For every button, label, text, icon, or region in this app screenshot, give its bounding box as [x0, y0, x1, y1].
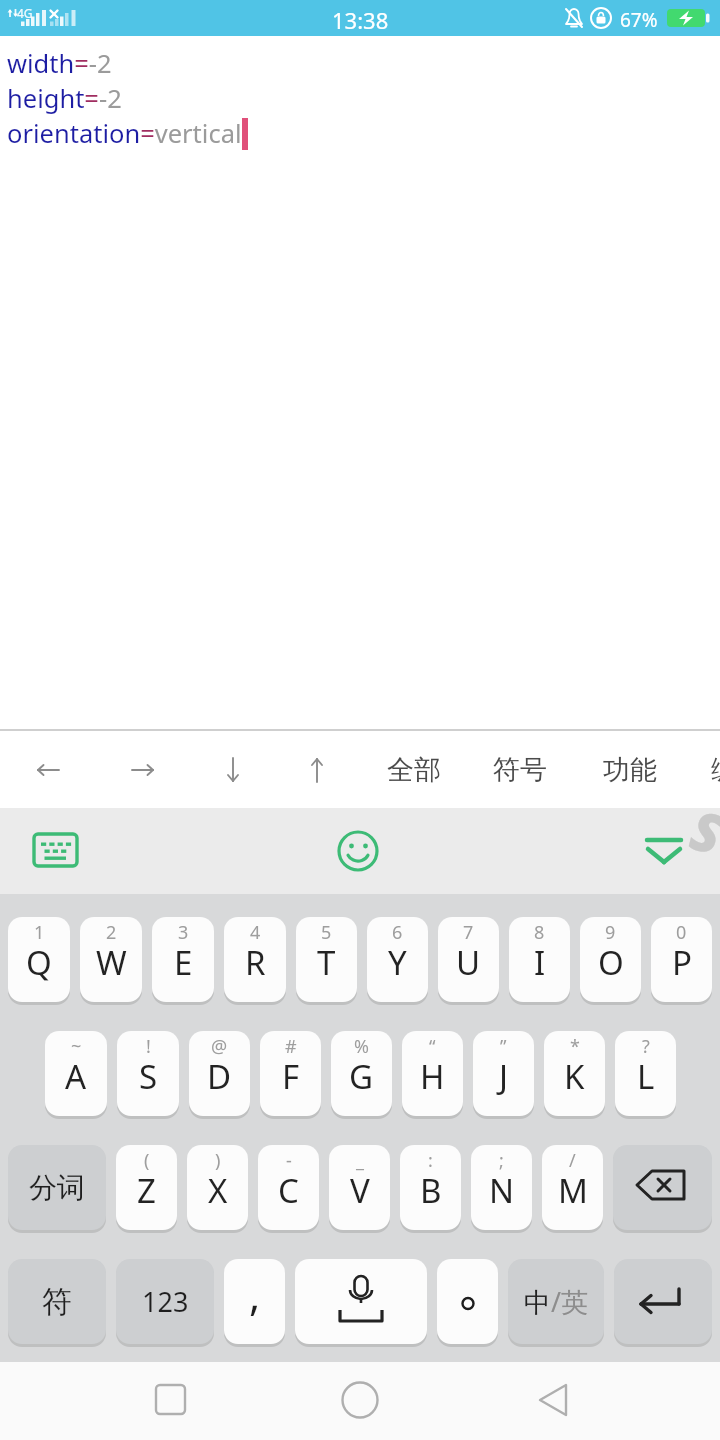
button[interactable] [613, 1145, 712, 1230]
staticText: G [349, 1054, 374, 1099]
staticText: 13:38 [332, 5, 389, 35]
staticText: 分词 [29, 1170, 85, 1205]
button[interactable]: 功能 [603, 753, 657, 787]
button[interactable]: 5 [296, 917, 357, 1002]
staticText: orientation=vertical [7, 116, 242, 151]
staticText: 123 [142, 1283, 189, 1320]
staticText: ( [144, 1148, 150, 1173]
staticText: O [598, 940, 624, 985]
staticText: width=-2 [7, 46, 112, 81]
button[interactable]: 2 [80, 917, 142, 1002]
button[interactable]: ? [615, 1031, 676, 1116]
button[interactable]: _ [329, 1145, 390, 1230]
button[interactable] [614, 1259, 712, 1344]
staticText: 5 [321, 920, 332, 945]
staticText: I [534, 940, 546, 985]
button[interactable]: 3 [152, 917, 214, 1002]
button[interactable]: ! [117, 1031, 179, 1116]
staticText: Q [26, 940, 52, 985]
button[interactable]: 中/英 [508, 1259, 604, 1344]
button[interactable]: 8 [509, 917, 570, 1002]
button[interactable]: 全部 [387, 753, 441, 787]
staticText: - [286, 1148, 292, 1173]
staticText: X [208, 1168, 228, 1213]
staticText: H [420, 1054, 445, 1099]
button[interactable]: # [260, 1031, 321, 1116]
staticText: T [317, 940, 336, 985]
staticText: R [245, 940, 266, 985]
button[interactable]: / [542, 1145, 603, 1230]
staticText: _ [356, 1148, 364, 1173]
staticText: “ [429, 1034, 436, 1059]
button[interactable] [634, 824, 696, 880]
button[interactable]: , [224, 1259, 285, 1344]
button[interactable] [213, 751, 253, 789]
staticText: 8 [534, 920, 545, 945]
staticText: J [499, 1054, 509, 1099]
staticText: Y [388, 940, 407, 985]
button[interactable]: ~ [45, 1031, 107, 1116]
staticText: 0 [676, 920, 687, 945]
staticText: U [456, 940, 481, 985]
button[interactable]: 9 [580, 917, 641, 1002]
button[interactable]: 123 [116, 1259, 214, 1344]
staticText: 3 [178, 920, 189, 945]
staticText: 中/英 [524, 1283, 589, 1320]
staticText: ? [642, 1034, 650, 1059]
button[interactable]: ” [473, 1031, 534, 1116]
staticText: F [282, 1054, 300, 1099]
staticText: Z [137, 1168, 156, 1213]
button[interactable] [24, 824, 86, 880]
button[interactable]: 1 [8, 917, 70, 1002]
staticText: V [350, 1168, 370, 1213]
staticText: : [428, 1148, 433, 1173]
button[interactable]: 0 [651, 917, 712, 1002]
button[interactable] [528, 1375, 578, 1425]
staticText: * [570, 1034, 580, 1059]
button[interactable] [123, 751, 163, 789]
staticText: ~ [71, 1034, 82, 1059]
staticText: K [564, 1054, 585, 1099]
button[interactable] [28, 751, 68, 789]
button[interactable] [437, 1259, 498, 1344]
staticText: % [354, 1034, 369, 1059]
staticText: 符 [42, 1283, 72, 1321]
button[interactable]: 分词 [8, 1145, 106, 1230]
staticText: W [96, 940, 127, 985]
button[interactable] [146, 1375, 196, 1425]
staticText: , [249, 1266, 261, 1323]
button[interactable] [295, 1259, 427, 1344]
staticText: # [285, 1034, 297, 1059]
staticText: 6 [392, 920, 403, 945]
button[interactable]: @ [189, 1031, 250, 1116]
button[interactable]: ( [116, 1145, 177, 1230]
staticText: @ [211, 1034, 228, 1059]
button[interactable] [330, 824, 390, 880]
staticText: B [420, 1168, 442, 1213]
button[interactable] [297, 751, 337, 789]
button[interactable]: : [400, 1145, 461, 1230]
button[interactable]: * [544, 1031, 605, 1116]
button[interactable]: ) [187, 1145, 248, 1230]
staticText: 2 [106, 920, 117, 945]
staticText: D [207, 1054, 232, 1099]
button[interactable]: 符号 [493, 753, 547, 787]
button[interactable]: 4 [224, 917, 286, 1002]
button[interactable]: ; [471, 1145, 532, 1230]
staticText: 4 [250, 920, 261, 945]
button[interactable]: “ [402, 1031, 463, 1116]
button[interactable]: % [331, 1031, 392, 1116]
staticText: 7 [463, 920, 474, 945]
staticText: A [65, 1054, 87, 1099]
button[interactable]: - [258, 1145, 319, 1230]
button[interactable]: 编 [711, 753, 720, 787]
staticText: 67% [620, 7, 658, 33]
staticText: C [278, 1168, 299, 1213]
button[interactable]: 符 [8, 1259, 106, 1344]
staticText: 9 [605, 920, 616, 945]
button[interactable]: 6 [367, 917, 428, 1002]
staticText: M [558, 1168, 588, 1213]
button[interactable] [335, 1375, 385, 1425]
staticText: N [489, 1168, 515, 1213]
button[interactable]: 7 [438, 917, 499, 1002]
